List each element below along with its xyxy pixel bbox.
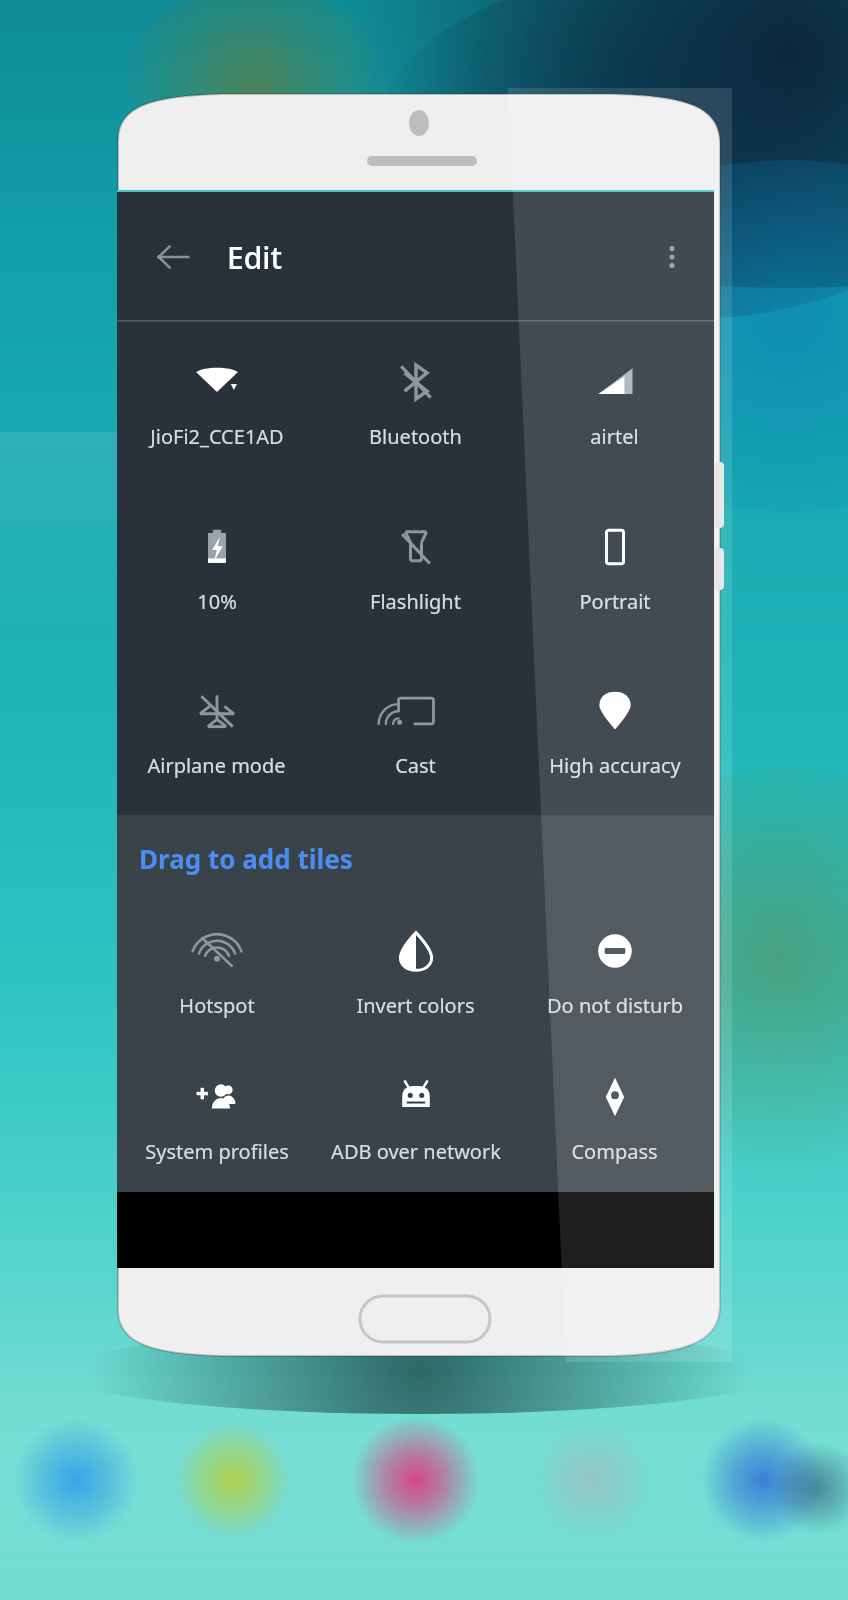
staticText: Cast <box>395 752 436 779</box>
staticText: Airplane mode <box>147 752 286 779</box>
button[interactable]: Hotspot <box>117 901 316 1046</box>
staticText: High accuracy <box>549 752 681 779</box>
button[interactable]: Compass <box>515 1046 714 1192</box>
staticText: 10% <box>197 588 237 615</box>
staticText: Drag to add tiles <box>139 841 353 876</box>
button[interactable]: airtel <box>515 322 714 487</box>
button[interactable]: Bluetooth <box>316 322 515 487</box>
staticText: ADB over network <box>331 1138 501 1165</box>
staticText: Do not disturb <box>547 992 683 1019</box>
staticText: Compass <box>571 1138 658 1165</box>
button[interactable]: Cast <box>316 651 515 815</box>
staticText: JioFi2_CCE1AD <box>150 423 284 450</box>
button[interactable]: High accuracy <box>515 651 714 815</box>
button[interactable]: ADB over network <box>316 1046 515 1192</box>
staticText: System profiles <box>145 1138 289 1165</box>
button[interactable]: Do not disturb <box>515 901 714 1046</box>
button[interactable]: Back <box>143 227 203 287</box>
button[interactable]: Flashlight <box>316 487 515 651</box>
staticText: Bluetooth <box>369 423 462 450</box>
staticText: Invert colors <box>356 992 475 1019</box>
staticText: Portrait <box>579 588 651 615</box>
staticText: Edit <box>227 237 282 278</box>
staticText: Hotspot <box>179 992 255 1019</box>
button[interactable]: 10% <box>117 487 316 651</box>
button[interactable]: System profiles <box>117 1046 316 1192</box>
button[interactable]: Invert colors <box>316 901 515 1046</box>
button[interactable]: Airplane mode <box>117 651 316 815</box>
staticText: airtel <box>590 423 639 450</box>
button[interactable]: More options <box>644 229 700 285</box>
button[interactable]: Portrait <box>515 487 714 651</box>
button[interactable]: JioFi2_CCE1AD <box>117 322 316 487</box>
staticText: Flashlight <box>370 588 461 615</box>
